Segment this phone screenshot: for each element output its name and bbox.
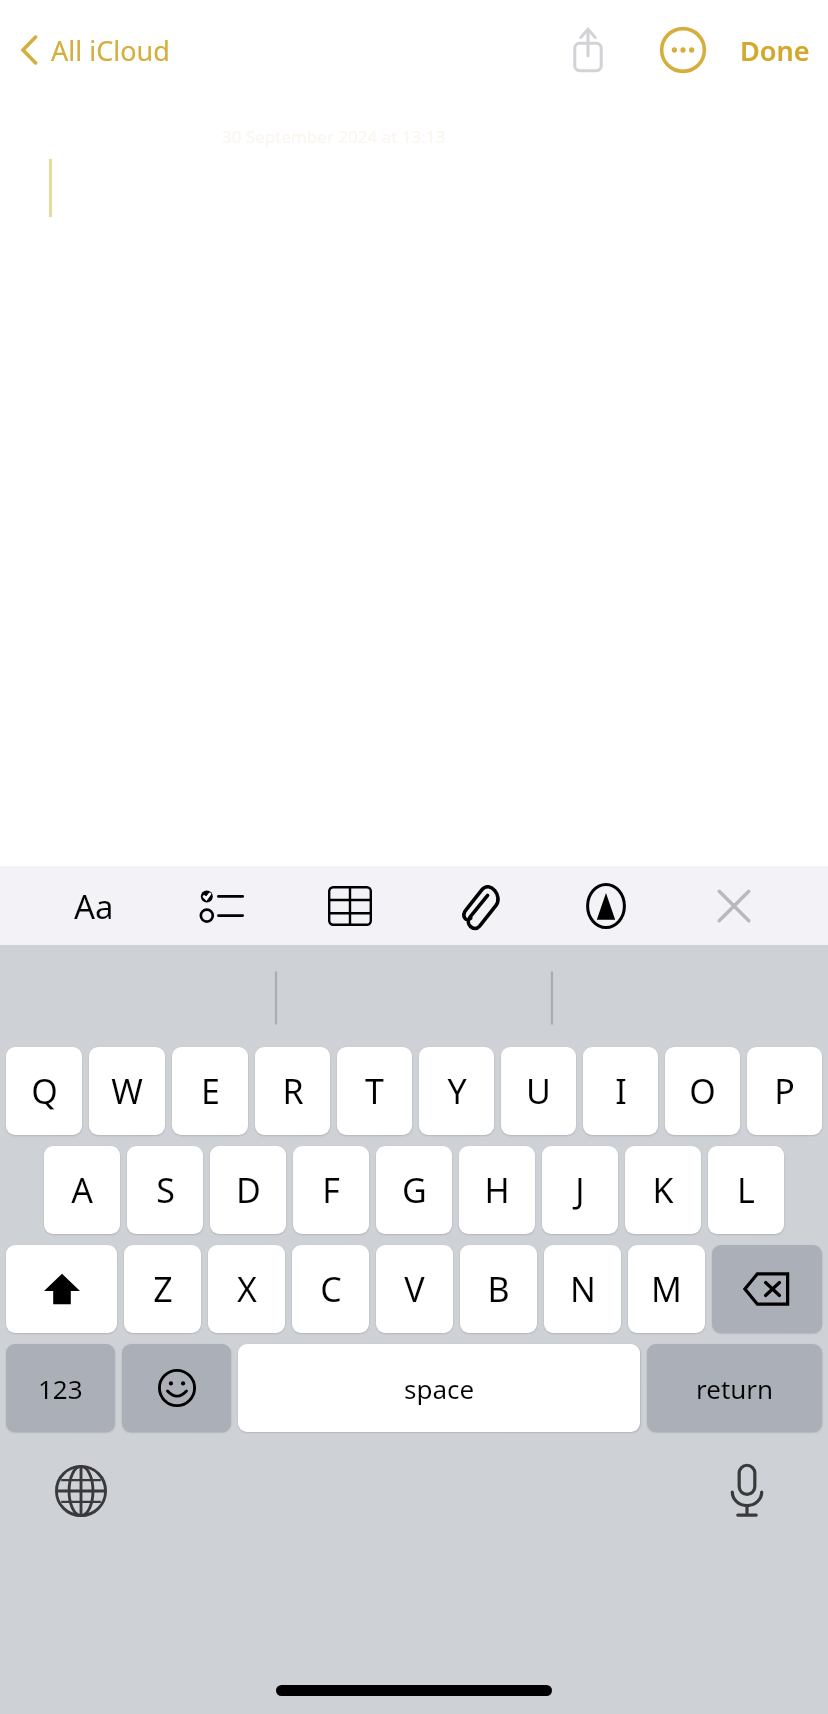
staticText: U <box>526 1068 551 1114</box>
staticText: E <box>201 1068 220 1114</box>
button[interactable]: S <box>127 1146 203 1234</box>
button[interactable]: J <box>542 1146 618 1234</box>
button[interactable]: Share <box>556 18 620 82</box>
button[interactable]: V <box>376 1245 453 1333</box>
staticText: M <box>651 1266 682 1312</box>
staticText: O <box>689 1068 716 1114</box>
staticText: Q <box>31 1068 58 1114</box>
staticText: K <box>652 1167 674 1213</box>
button[interactable]: All iCloud <box>14 31 170 69</box>
staticText: S <box>156 1167 175 1213</box>
button[interactable]: P <box>747 1047 822 1135</box>
staticText: B <box>487 1266 510 1312</box>
button[interactable]: Dictation <box>714 1458 780 1524</box>
button[interactable]: F <box>293 1146 369 1234</box>
button[interactable]: Switch keyboard <box>48 1458 114 1524</box>
staticText: V <box>404 1266 425 1312</box>
staticText: F <box>322 1167 340 1213</box>
button[interactable]: G <box>376 1146 452 1234</box>
staticText: X <box>237 1266 257 1312</box>
staticText: Done <box>740 32 810 69</box>
button[interactable]: Attach <box>444 872 512 940</box>
button[interactable]: B <box>460 1245 537 1333</box>
button[interactable]: Close <box>700 872 768 940</box>
button[interactable]: Text format <box>60 872 128 940</box>
staticText: H <box>484 1167 510 1213</box>
button[interactable]: return <box>647 1344 822 1432</box>
button[interactable]: C <box>292 1245 369 1333</box>
staticText: N <box>570 1266 596 1312</box>
staticText: return <box>696 1371 774 1406</box>
staticText: D <box>236 1167 261 1213</box>
staticText: I <box>615 1068 627 1114</box>
button[interactable]: N <box>544 1245 621 1333</box>
button[interactable]: X <box>208 1245 285 1333</box>
button[interactable]: L <box>708 1146 784 1234</box>
staticText: 30 September 2024 at 13:13 <box>222 125 446 148</box>
button[interactable]: Emoji <box>122 1344 231 1432</box>
button[interactable]: Y <box>419 1047 494 1135</box>
button[interactable]: H <box>459 1146 535 1234</box>
staticText: P <box>774 1068 795 1114</box>
button[interactable]: Z <box>124 1245 201 1333</box>
staticText: space <box>404 1371 475 1406</box>
button[interactable]: Checklist <box>188 872 256 940</box>
button[interactable]: A <box>44 1146 120 1234</box>
button[interactable]: M <box>628 1245 705 1333</box>
button[interactable]: E <box>172 1047 248 1135</box>
button[interactable]: R <box>255 1047 330 1135</box>
staticText: Aa <box>74 884 114 929</box>
button[interactable]: W <box>89 1047 165 1135</box>
button[interactable]: K <box>625 1146 701 1234</box>
button[interactable]: U <box>501 1047 576 1135</box>
staticText: A <box>71 1167 93 1213</box>
button[interactable]: Q <box>6 1047 82 1135</box>
staticText: Z <box>153 1266 173 1312</box>
button[interactable]: I <box>583 1047 658 1135</box>
staticText: 123 <box>38 1371 83 1406</box>
button[interactable]: More options <box>654 21 712 79</box>
staticText: W <box>111 1068 143 1114</box>
staticText: J <box>575 1167 585 1213</box>
button[interactable]: Delete <box>712 1245 822 1333</box>
staticText: All iCloud <box>51 32 170 69</box>
button[interactable]: Done <box>740 32 810 69</box>
staticText: T <box>365 1068 384 1114</box>
button[interactable]: Table <box>316 872 384 940</box>
button[interactable]: Numbers <box>6 1344 115 1432</box>
staticText: C <box>320 1266 342 1312</box>
button[interactable]: T <box>337 1047 412 1135</box>
button[interactable]: O <box>665 1047 740 1135</box>
button[interactable]: Shift <box>6 1245 117 1333</box>
button[interactable]: Markup <box>572 872 640 940</box>
staticText: L <box>737 1167 755 1213</box>
button[interactable]: space <box>238 1344 640 1432</box>
staticText: G <box>402 1167 427 1213</box>
staticText: R <box>282 1068 304 1114</box>
staticText: Y <box>447 1068 467 1114</box>
button[interactable]: D <box>210 1146 286 1234</box>
